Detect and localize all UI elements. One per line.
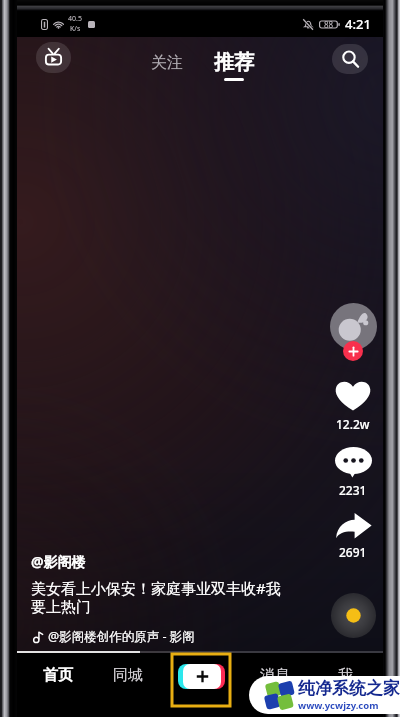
staticText: 我 bbox=[338, 666, 353, 685]
button[interactable]: Create bbox=[163, 653, 240, 717]
staticText: K/s bbox=[70, 24, 81, 34]
staticText: 纯净系统之家 bbox=[298, 678, 400, 699]
button[interactable]: 同城 bbox=[93, 653, 163, 717]
button[interactable]: 首页 bbox=[23, 653, 93, 717]
staticText: 消息 bbox=[260, 666, 290, 685]
button[interactable]: 消息 bbox=[240, 653, 310, 717]
button[interactable]: 2691 bbox=[326, 512, 380, 560]
button[interactable]: Search bbox=[332, 44, 368, 74]
staticText: 首页 bbox=[43, 666, 73, 685]
button[interactable]: 推荐 bbox=[207, 44, 261, 75]
button[interactable]: 2231 bbox=[326, 447, 380, 498]
button[interactable]: Follow bbox=[326, 303, 380, 367]
staticText: 2231 bbox=[339, 482, 367, 498]
button[interactable]: Live bbox=[36, 42, 71, 73]
staticText: www.ycwjzy.com bbox=[298, 699, 379, 712]
button[interactable]: 我 bbox=[310, 653, 380, 717]
staticText: 同城 bbox=[113, 666, 143, 685]
button[interactable]: Music bbox=[326, 588, 380, 642]
button[interactable]: 关注 bbox=[144, 44, 190, 64]
staticText: 推荐 bbox=[214, 50, 254, 75]
staticText: 关注 bbox=[151, 53, 183, 73]
staticText: 88 bbox=[324, 19, 334, 30]
staticText: 40.5 bbox=[68, 14, 82, 24]
button[interactable]: 12.2w bbox=[326, 380, 380, 432]
staticText: 12.2w bbox=[336, 416, 370, 432]
staticText: @影阁楼 bbox=[31, 552, 86, 571]
button[interactable]: @影阁楼创作的原声 - 影阁 bbox=[31, 628, 195, 645]
staticText: 美女看上小保安！家庭事业双丰收#我要上热门 bbox=[31, 578, 294, 617]
staticText: 2691 bbox=[339, 544, 367, 560]
staticText: @影阁楼创作的原声 - 影阁 bbox=[48, 628, 195, 645]
staticText: 4:21 bbox=[345, 15, 371, 33]
